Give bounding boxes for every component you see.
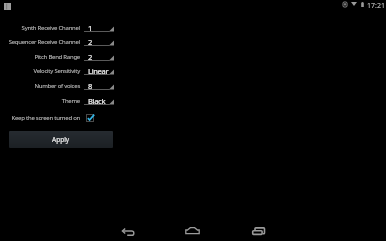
- button[interactable]: Number of voices: [0, 78, 386, 93]
- staticText: Sequencer Receive Channel: [0, 38, 80, 46]
- staticText: 2: [88, 37, 92, 47]
- button[interactable]: Keep the screen turned on: [0, 109, 386, 122]
- staticText: Synth Receive Channel: [0, 24, 80, 32]
- button[interactable]: Synth Receive Channel: [0, 20, 386, 35]
- staticText: 17:21: [367, 1, 385, 11]
- staticText: Number of voices: [0, 82, 80, 90]
- staticText: Keep the screen turned on: [0, 114, 80, 122]
- button[interactable]: Back: [108, 216, 148, 240]
- button[interactable]: Home: [173, 216, 213, 240]
- staticText: Pitch Bend Range: [0, 53, 80, 61]
- staticText: 2: [88, 52, 92, 62]
- staticText: 1: [88, 23, 92, 33]
- staticText: Velocity Sensitivity: [0, 67, 80, 75]
- button[interactable]: Velocity Sensitivity: [0, 63, 386, 78]
- button[interactable]: Pitch Bend Range: [0, 49, 386, 64]
- button[interactable]: Recent apps: [241, 216, 281, 240]
- button[interactable]: Theme: [0, 93, 386, 108]
- staticText: Theme: [0, 97, 80, 105]
- staticText: 8: [88, 81, 92, 91]
- staticText: Linear: [88, 66, 109, 76]
- staticText: Black: [88, 96, 106, 106]
- button[interactable]: Sequencer Receive Channel: [0, 34, 386, 49]
- button[interactable]: Apply: [9, 131, 113, 148]
- staticText: Apply: [52, 135, 70, 144]
